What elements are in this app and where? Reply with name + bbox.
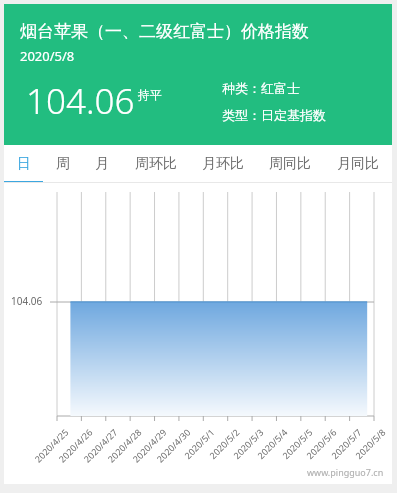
staticText: 种类：红富士 [222, 80, 300, 96]
staticText: 日 [17, 155, 31, 173]
staticText: 2020/4/27 [69, 426, 119, 477]
staticText: 类型：日定基指数 [222, 107, 326, 123]
button[interactable]: 月环比 [189, 145, 256, 183]
staticText: 2020/5/3 [215, 426, 265, 477]
staticText: 2020/5/4 [239, 426, 289, 477]
staticText: 104.06 [26, 77, 135, 125]
staticText: 持平 [138, 87, 162, 102]
staticText: 2020/5/5 [264, 426, 314, 477]
staticText: 2020/5/1 [166, 426, 216, 477]
button[interactable]: 日 [4, 145, 43, 183]
staticText: 周环比 [135, 155, 177, 173]
staticText: 周同比 [269, 155, 311, 173]
staticText: 烟台苹果（一、二级红富士）价格指数 [20, 21, 309, 42]
button[interactable]: 月同比 [323, 145, 392, 183]
button[interactable]: 周环比 [122, 145, 189, 183]
staticText: 2020/5/2 [191, 426, 241, 477]
staticText: 2020/4/28 [93, 426, 143, 477]
staticText: 2020/4/26 [44, 426, 94, 477]
staticText: 月 [95, 155, 109, 173]
staticText: 周 [56, 155, 70, 173]
staticText: 月同比 [337, 155, 379, 173]
staticText: 2020/5/8 [337, 426, 387, 477]
button[interactable]: 周同比 [256, 145, 323, 183]
button[interactable]: 月 [82, 145, 122, 183]
staticText: 2020/5/7 [313, 426, 363, 477]
staticText: 2020/5/6 [288, 426, 338, 477]
staticText: www.pingguo7.cn [307, 466, 384, 478]
button[interactable]: 周 [43, 145, 82, 183]
staticText: 月环比 [202, 155, 244, 173]
staticText: 2020/4/30 [142, 426, 192, 477]
staticText: 104.06 [11, 294, 43, 308]
staticText: 2020/5/8 [20, 47, 75, 65]
staticText: 2020/4/29 [118, 426, 168, 477]
staticText: 2020/4/25 [20, 426, 70, 477]
